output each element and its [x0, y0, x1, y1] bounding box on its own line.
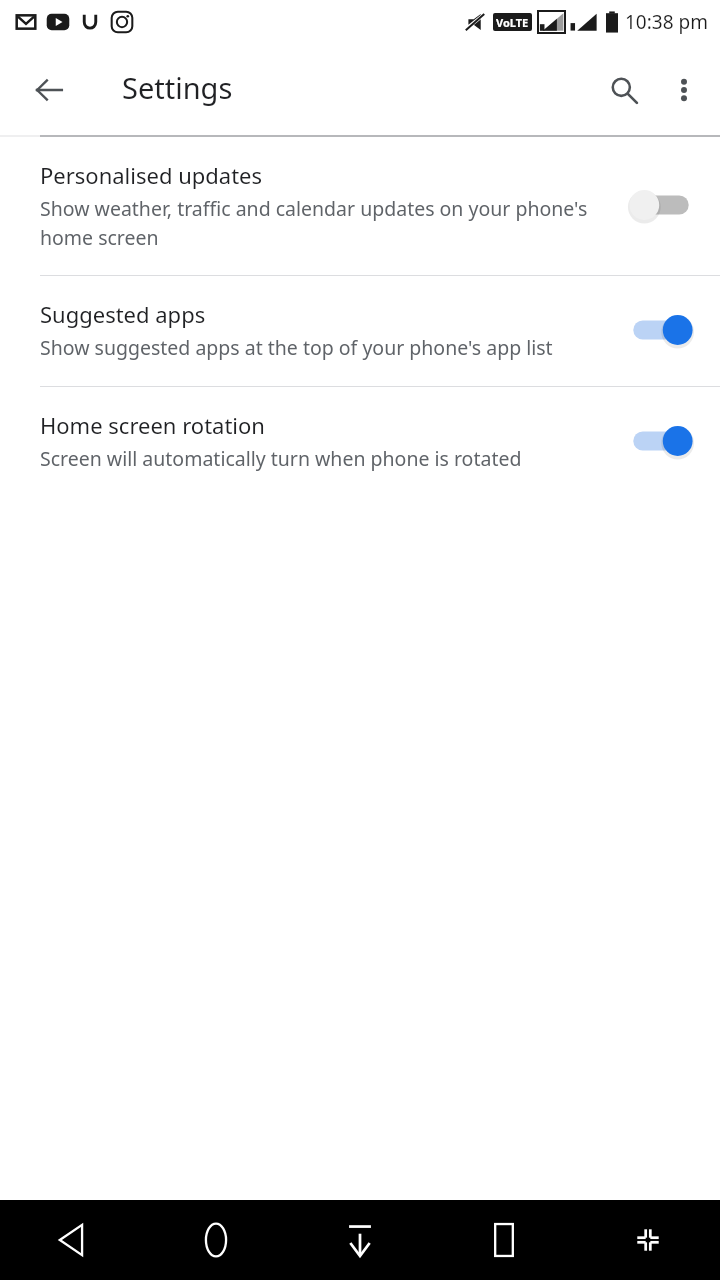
button[interactable]: On: [628, 420, 694, 462]
button[interactable]: More options: [654, 60, 714, 120]
button[interactable]: Back: [0, 1200, 144, 1280]
button[interactable]: Collapse: [576, 1200, 720, 1280]
staticText: Personalised updates: [40, 160, 263, 190]
staticText: Show weather, traffic and calendar updat…: [40, 195, 602, 250]
staticText: Settings: [122, 68, 233, 107]
button[interactable]: Search: [594, 60, 654, 120]
button[interactable]: Home: [144, 1200, 288, 1280]
button[interactable]: Personalised updates: [0, 137, 720, 275]
button[interactable]: Back: [22, 63, 76, 117]
button[interactable]: Off: [628, 184, 694, 226]
staticText: Home screen rotation: [40, 410, 265, 440]
button[interactable]: Recents: [432, 1200, 576, 1280]
staticText: Suggested apps: [40, 299, 206, 329]
staticText: VoLTE: [496, 15, 529, 30]
button[interactable]: On: [628, 309, 694, 351]
staticText: Screen will automatically turn when phon…: [40, 445, 522, 472]
button[interactable]: Home screen rotation: [0, 387, 720, 497]
staticText: 10:38 pm: [625, 9, 708, 35]
button[interactable]: Hide keyboard: [288, 1200, 432, 1280]
staticText: Show suggested apps at the top of your p…: [40, 334, 553, 361]
button[interactable]: Suggested apps: [0, 276, 720, 386]
